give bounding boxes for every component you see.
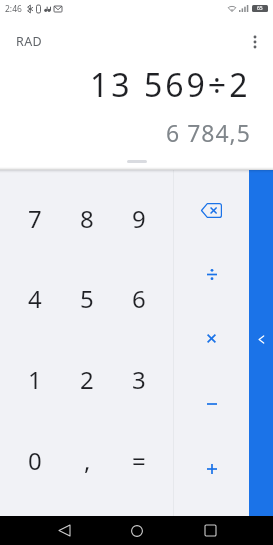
button[interactable]: 4 xyxy=(8,258,61,339)
button[interactable]: Show advanced pad xyxy=(249,170,273,516)
staticText: 9 xyxy=(132,202,146,235)
staticText: 6 784,5 xyxy=(166,117,251,148)
staticText: 2 xyxy=(80,363,94,396)
button[interactable]: 6 xyxy=(113,258,165,339)
staticText: 5 xyxy=(80,282,94,315)
staticText: 6 xyxy=(132,282,146,315)
button[interactable]: 8 xyxy=(61,178,113,258)
staticText: 13 569÷2 xyxy=(90,63,251,107)
staticText: 65 xyxy=(257,5,263,12)
staticText: 2:46 xyxy=(5,3,22,15)
button[interactable]: 9 xyxy=(113,178,165,258)
button[interactable]: Recent apps xyxy=(189,516,231,545)
staticText: 1 xyxy=(28,363,42,396)
staticText: 3 xyxy=(132,363,146,396)
button[interactable]: 5 xyxy=(61,258,113,339)
staticText: RAD xyxy=(16,33,43,50)
staticText: , xyxy=(84,444,91,477)
staticText: 4 xyxy=(28,282,42,315)
staticText: = xyxy=(132,444,146,477)
button[interactable]: , xyxy=(61,420,113,501)
button[interactable]: Minus xyxy=(174,371,249,436)
button[interactable]: Multiply xyxy=(174,306,249,371)
button[interactable]: 1 xyxy=(8,339,61,420)
button[interactable]: RAD xyxy=(0,17,59,66)
button[interactable]: More options xyxy=(237,24,273,60)
button[interactable]: 0 xyxy=(8,420,61,501)
button[interactable]: Backspace xyxy=(174,178,249,242)
button[interactable]: Back xyxy=(43,516,85,545)
button[interactable]: Plus xyxy=(174,436,249,501)
staticText: 8 xyxy=(80,202,94,235)
button[interactable]: 7 xyxy=(8,178,61,258)
button[interactable]: Divide xyxy=(174,242,249,306)
button[interactable]: 2 xyxy=(61,339,113,420)
staticText: 7 xyxy=(28,202,42,235)
button[interactable]: Home xyxy=(116,516,158,545)
staticText: 0 xyxy=(28,444,42,477)
button[interactable]: 3 xyxy=(113,339,165,420)
button[interactable]: = xyxy=(113,420,165,501)
